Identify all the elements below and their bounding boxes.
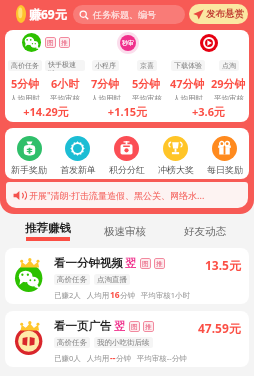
staticText: 首发新单	[60, 164, 96, 175]
staticText: 47.59元	[198, 320, 241, 336]
staticText: 快手极速版	[48, 60, 82, 71]
staticText: 7分钟	[91, 76, 120, 91]
staticText: 推荐赚钱	[25, 221, 71, 235]
staticText: 点淘	[222, 61, 236, 70]
staticText: 新手奖励	[11, 164, 47, 175]
button[interactable]: WeChat tasks	[5, 30, 87, 55]
button[interactable]: 冲榜大奖	[151, 136, 200, 175]
staticText: 极速审核	[104, 225, 146, 238]
staticText: 翌	[114, 319, 125, 333]
staticText: 平均审核	[214, 94, 244, 100]
other: Search	[79, 10, 89, 20]
button[interactable]: 推荐赚钱	[22, 214, 74, 248]
staticText: 人均用时	[91, 94, 121, 100]
staticText: +3.6元	[168, 104, 249, 119]
staticText: 积分分红	[109, 164, 145, 175]
staticText: 高价任务	[57, 275, 87, 284]
staticText: 47分钟	[170, 76, 205, 91]
button[interactable]: 极速审核	[101, 214, 149, 248]
staticText: 分钟 平均审核--分钟	[116, 353, 187, 363]
staticText: 图	[47, 38, 54, 47]
button[interactable]: 好友动态	[181, 214, 229, 248]
staticText: 高价任务	[11, 61, 39, 70]
button[interactable]: 京喜	[126, 55, 167, 100]
staticText: 平均审核	[50, 94, 80, 100]
other: Announcement	[13, 190, 24, 201]
staticText: 人均用时	[10, 94, 40, 100]
staticText: 好友动态	[184, 225, 226, 238]
staticText: 人均用时	[173, 94, 203, 100]
button[interactable]: 下载体验	[167, 55, 208, 100]
staticText: 平均审核	[132, 94, 162, 100]
staticText: 分钟 平均审核1小时	[120, 290, 191, 300]
button[interactable]: 新手奖励	[5, 136, 53, 175]
staticText: 29分钟	[211, 76, 246, 91]
button[interactable]: 看一分钟视频	[5, 248, 249, 304]
staticText: +14.29元	[5, 104, 87, 119]
staticText: 图	[131, 322, 138, 331]
button[interactable]: 积分分红	[102, 136, 151, 175]
staticText: 推	[145, 322, 152, 331]
button[interactable]: 看一页广告	[5, 311, 249, 367]
button[interactable]: 每日奖励	[200, 136, 249, 175]
staticText: 京喜	[140, 61, 154, 70]
staticText: 开展"清朗·打击流量造假、黑公关、网络水...	[29, 189, 205, 201]
staticText: 已赚0人 人均用	[54, 353, 110, 363]
staticText: 16	[110, 289, 120, 301]
button[interactable]: 点淘	[208, 55, 249, 100]
staticText: 冲榜大奖	[158, 164, 194, 175]
staticText: 推	[156, 259, 163, 268]
button[interactable]: Search	[73, 5, 185, 24]
button[interactable]: 高价任务	[5, 55, 45, 100]
staticText: 发布悬赏	[206, 8, 244, 20]
staticText: 图	[142, 259, 149, 268]
staticText: 每日奖励	[207, 164, 243, 175]
staticText: 5分钟	[132, 76, 161, 91]
button[interactable]: 发布悬赏	[189, 4, 248, 24]
staticText: 点淘直播	[97, 275, 127, 284]
staticText: 已赚2人 人均用	[54, 290, 110, 300]
staticText: 小程序	[95, 61, 116, 70]
button[interactable]: Instant review tasks	[87, 30, 168, 55]
staticText: 看一页广告	[54, 319, 112, 333]
staticText: 13.5元	[205, 257, 241, 273]
staticText: 推	[61, 38, 68, 47]
staticText: +1.15元	[87, 104, 168, 119]
button[interactable]: 快手极速版	[45, 55, 85, 100]
staticText: --	[110, 352, 116, 364]
staticText: 5分钟	[11, 76, 40, 91]
button[interactable]: 小程序	[85, 55, 126, 100]
staticText: 下载体验	[174, 61, 202, 70]
staticText: 看一分钟视频	[54, 256, 123, 270]
staticText: 高价任务	[57, 338, 87, 347]
staticText: 我的小吃街后续	[97, 338, 150, 347]
staticText: 6小时	[51, 76, 80, 91]
staticText: 任务标题、编号	[93, 9, 156, 20]
button[interactable]: 首发新单	[53, 136, 102, 175]
staticText: 翌	[125, 256, 136, 270]
button[interactable]: Diantao tasks	[168, 30, 249, 55]
staticText: 赚69元	[29, 6, 67, 22]
staticText: 秒审	[122, 39, 134, 47]
button[interactable]: Announcement	[6, 182, 248, 208]
